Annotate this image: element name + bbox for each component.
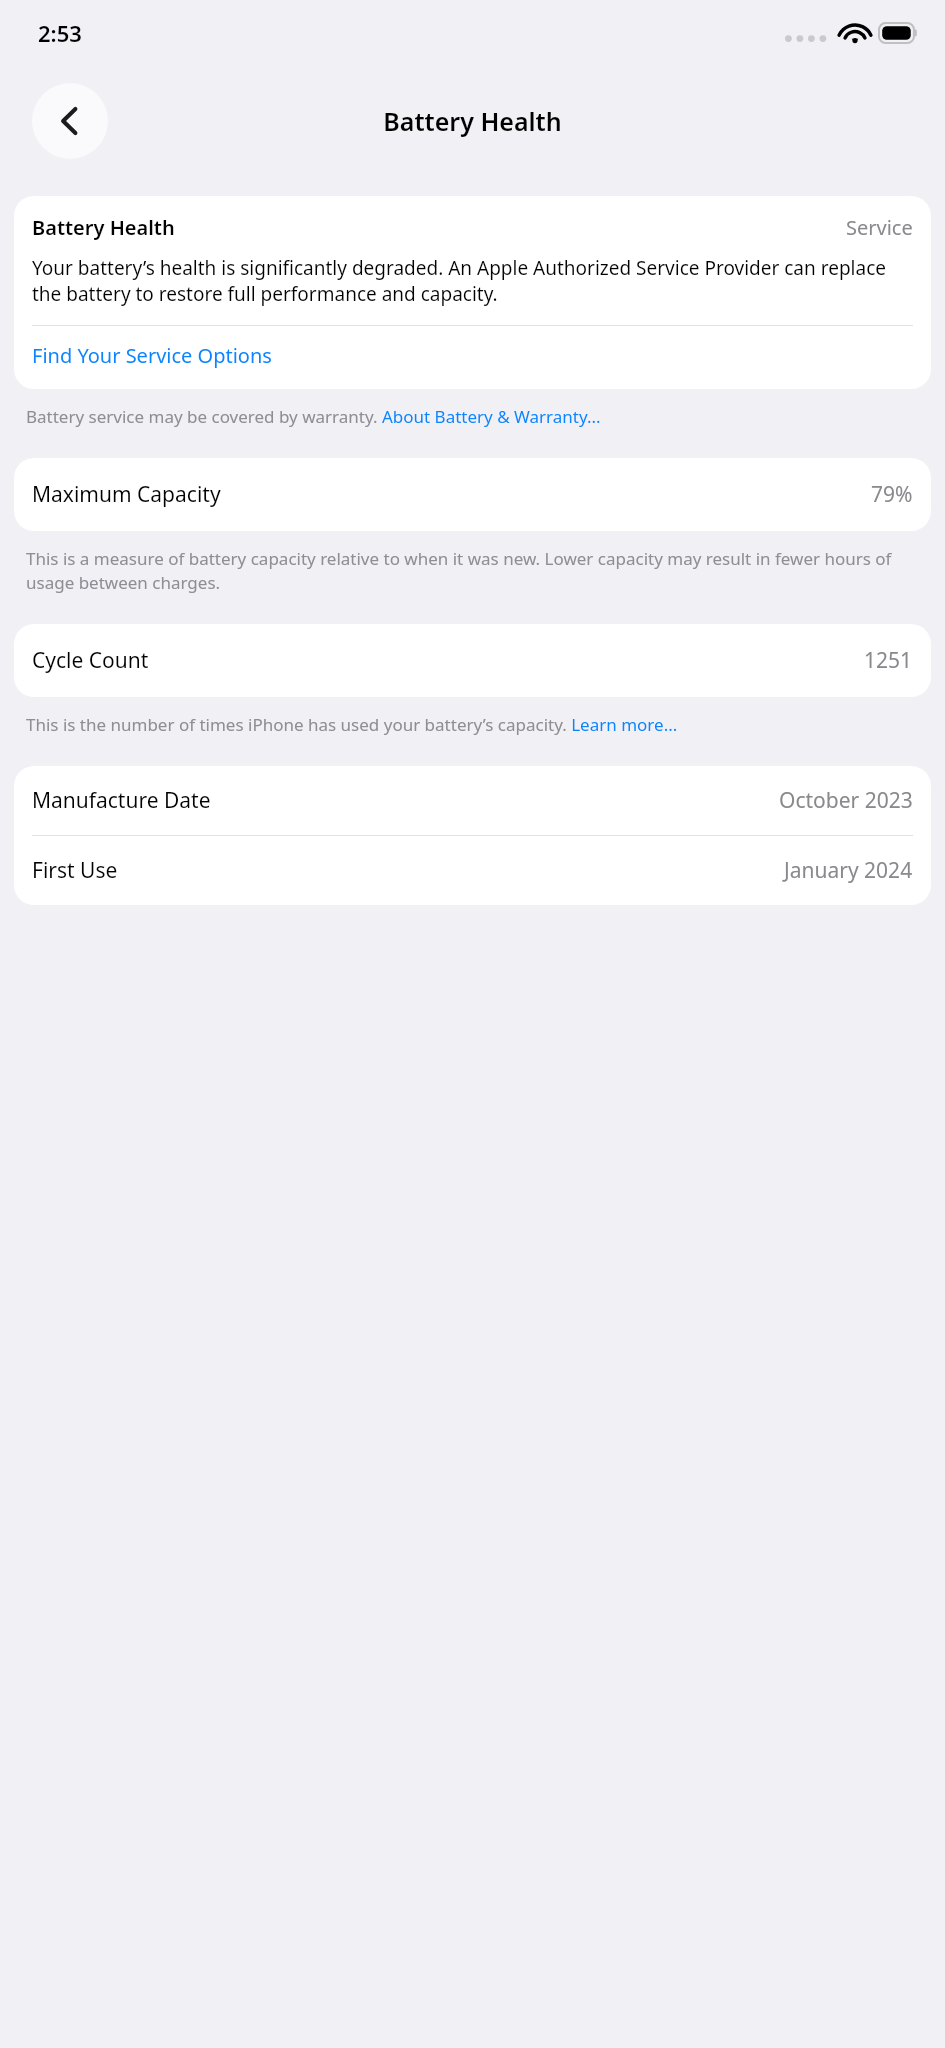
button[interactable]: Maximum Capacity — [14, 458, 931, 531]
button[interactable]: Cycle Count — [14, 624, 931, 697]
staticText: October 2023 — [779, 786, 913, 815]
staticText: This is a measure of battery capacity re… — [26, 547, 919, 594]
staticText: First Use — [32, 856, 118, 885]
staticText: 79% — [871, 480, 913, 509]
button[interactable]: Find Your Service Options — [14, 326, 931, 385]
button[interactable]: First Use — [14, 836, 931, 905]
button[interactable]: Manufacture Date — [14, 766, 931, 835]
staticText: Find Your Service Options — [32, 342, 272, 369]
staticText: Service — [846, 214, 913, 241]
staticText: Battery Health — [383, 104, 562, 138]
staticText: Battery Health — [32, 214, 175, 241]
button[interactable]: Back — [32, 83, 108, 159]
staticText: 1251 — [864, 646, 913, 675]
staticText: 2:53 — [38, 18, 82, 48]
staticText: Your battery’s health is significantly d… — [32, 255, 913, 307]
staticText: Battery service may be covered by warran… — [26, 405, 919, 428]
staticText: Manufacture Date — [32, 786, 211, 815]
staticText: This is the number of times iPhone has u… — [26, 713, 919, 736]
staticText: Cycle Count — [32, 646, 149, 675]
staticText: January 2024 — [784, 856, 913, 885]
staticText: Maximum Capacity — [32, 480, 221, 509]
